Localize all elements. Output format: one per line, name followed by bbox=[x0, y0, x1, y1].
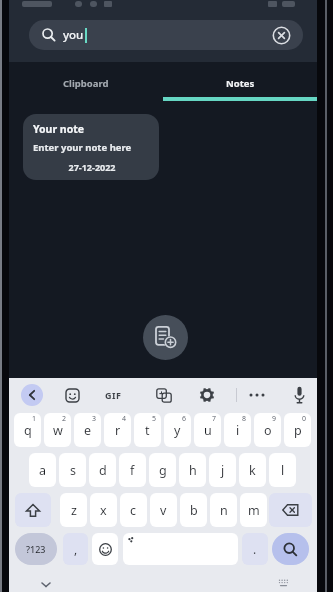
staticText: f bbox=[130, 462, 135, 479]
staticText: 2 bbox=[62, 414, 67, 424]
staticText: c bbox=[130, 502, 137, 519]
button[interactable]: v bbox=[150, 493, 177, 527]
button[interactable] bbox=[123, 533, 238, 565]
staticText: k bbox=[249, 462, 256, 479]
button[interactable]: d bbox=[89, 453, 116, 487]
staticText: 3 bbox=[92, 414, 97, 424]
button[interactable]: s bbox=[59, 453, 86, 487]
staticText: 27-12-2022 bbox=[33, 161, 151, 173]
staticText: i bbox=[236, 422, 240, 439]
staticText: s bbox=[70, 462, 76, 479]
button[interactable]: m bbox=[240, 493, 267, 527]
staticText: g bbox=[159, 462, 167, 479]
button[interactable]: h bbox=[179, 453, 206, 487]
staticText: n bbox=[220, 502, 228, 519]
button[interactable] bbox=[247, 387, 267, 403]
button[interactable] bbox=[155, 387, 172, 403]
staticText: x bbox=[100, 502, 107, 519]
staticText: you bbox=[63, 27, 84, 43]
button[interactable]: o bbox=[254, 413, 281, 447]
staticText: e bbox=[84, 422, 92, 439]
button[interactable]: e bbox=[74, 413, 101, 447]
button[interactable] bbox=[21, 384, 43, 406]
staticText: l bbox=[281, 462, 285, 479]
staticText: Notes bbox=[226, 77, 255, 90]
button[interactable]: a bbox=[29, 453, 56, 487]
staticText: ?123 bbox=[26, 543, 46, 555]
button[interactable]: t bbox=[134, 413, 161, 447]
button[interactable]: GIF bbox=[101, 387, 126, 403]
staticText: 9 bbox=[272, 414, 277, 424]
staticText: h bbox=[189, 462, 197, 479]
staticText: z bbox=[71, 502, 77, 519]
staticText: y bbox=[174, 422, 181, 439]
staticText: 7 bbox=[212, 414, 217, 424]
staticText: . bbox=[253, 541, 257, 557]
button[interactable]: . bbox=[242, 533, 268, 565]
button[interactable] bbox=[64, 387, 80, 403]
staticText: m bbox=[248, 502, 260, 519]
button[interactable]: r bbox=[104, 413, 131, 447]
staticText: o bbox=[264, 422, 272, 439]
button[interactable]: you bbox=[29, 20, 303, 50]
button[interactable]: Notes bbox=[163, 71, 317, 95]
button[interactable]: u bbox=[194, 413, 221, 447]
button[interactable]: b bbox=[180, 493, 207, 527]
staticText: GIF bbox=[105, 389, 122, 401]
staticText: 1 bbox=[32, 414, 37, 424]
button[interactable]: i bbox=[224, 413, 251, 447]
button[interactable]: ?123 bbox=[15, 533, 57, 565]
button[interactable]: p bbox=[284, 413, 311, 447]
button[interactable]: g bbox=[149, 453, 176, 487]
staticText: u bbox=[204, 422, 212, 439]
staticText: d bbox=[99, 462, 107, 479]
staticText: r bbox=[115, 422, 121, 439]
button[interactable]: , bbox=[63, 533, 88, 565]
button[interactable]: w bbox=[44, 413, 71, 447]
button[interactable]: f bbox=[119, 453, 146, 487]
staticText: 4 bbox=[122, 414, 127, 424]
button[interactable]: c bbox=[120, 493, 147, 527]
staticText: 5 bbox=[152, 414, 157, 424]
staticText: 0 bbox=[302, 414, 307, 424]
staticText: p bbox=[294, 422, 302, 439]
button[interactable]: n bbox=[210, 493, 237, 527]
staticText: v bbox=[160, 502, 167, 519]
button[interactable]: z bbox=[60, 493, 87, 527]
button[interactable]: Clipboard bbox=[9, 71, 163, 95]
staticText: t bbox=[145, 422, 150, 439]
button[interactable]: q bbox=[14, 413, 41, 447]
staticText: b bbox=[190, 502, 198, 519]
staticText: a bbox=[39, 462, 47, 479]
staticText: , bbox=[74, 541, 78, 557]
button[interactable] bbox=[269, 493, 312, 527]
staticText: 6 bbox=[182, 414, 187, 424]
button[interactable]: x bbox=[90, 493, 117, 527]
staticText: 8 bbox=[242, 414, 247, 424]
staticText: Enter your note here bbox=[33, 141, 132, 154]
button[interactable] bbox=[92, 533, 118, 565]
button[interactable] bbox=[198, 386, 216, 404]
button[interactable] bbox=[292, 385, 307, 405]
staticText: Your note bbox=[33, 122, 85, 136]
button[interactable]: j bbox=[209, 453, 236, 487]
staticText: Clipboard bbox=[63, 77, 109, 90]
button[interactable] bbox=[272, 533, 309, 565]
button[interactable]: l bbox=[269, 453, 296, 487]
button[interactable] bbox=[15, 493, 51, 527]
button[interactable] bbox=[143, 315, 188, 360]
staticText: j bbox=[221, 462, 225, 479]
staticText: w bbox=[53, 422, 63, 439]
button[interactable]: k bbox=[239, 453, 266, 487]
button[interactable]: Your note bbox=[23, 114, 159, 180]
staticText: q bbox=[24, 422, 32, 439]
button[interactable]: y bbox=[164, 413, 191, 447]
